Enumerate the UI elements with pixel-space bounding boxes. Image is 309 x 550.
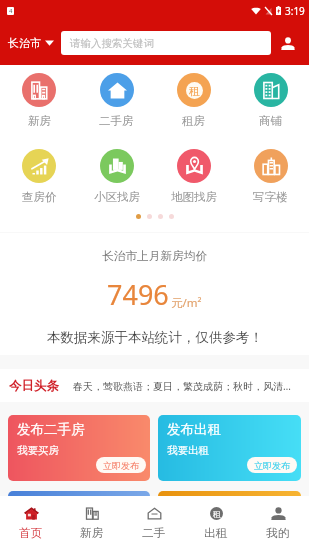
button[interactable]: 我的 [247, 496, 309, 550]
staticText: 出租 [204, 526, 228, 541]
button[interactable]: 新房 [61, 496, 123, 550]
staticText: 小区找房 [94, 190, 140, 204]
button[interactable]: 地图找房 [155, 149, 232, 204]
staticText: 我要求购 [17, 520, 59, 533]
button[interactable]: 二手 [123, 496, 185, 550]
staticText: 7496 [107, 276, 169, 313]
button[interactable]: 立即发布 [247, 526, 297, 542]
staticText: 租 [189, 84, 200, 98]
staticText: 长治市 [8, 36, 41, 50]
staticText: 春天，莺歌燕语；夏日，繁茂成荫；秋时，风清… [73, 379, 291, 393]
staticText: 发布二手房 [17, 421, 85, 438]
button[interactable]: 长治市 [8, 30, 54, 56]
staticText: 发布出租 [167, 421, 221, 438]
staticText: 我要求租 [167, 520, 209, 533]
button[interactable]: 发布求购 [8, 491, 150, 550]
button[interactable]: 发布求租 [158, 491, 301, 550]
button[interactable]: 查房价 [0, 149, 78, 204]
staticText: 二手房 [99, 114, 134, 128]
staticText: 发布求购 [17, 497, 71, 514]
staticText: 租 [213, 509, 221, 519]
button[interactable]: 新房 [0, 73, 78, 128]
button[interactable]: 立即发布 [96, 457, 146, 473]
button[interactable]: 个人中心 [280, 31, 296, 55]
staticText: 4 [9, 7, 13, 15]
staticText: 我要出租 [167, 444, 209, 457]
staticText: 长治市上月新房均价 [102, 249, 208, 264]
staticText: 立即发布 [103, 460, 139, 471]
staticText: 3:19 [285, 4, 305, 18]
button[interactable]: 发布二手房 [8, 415, 150, 481]
staticText: 元/m² [171, 295, 202, 311]
staticText: 写字楼 [253, 190, 288, 204]
button[interactable]: 今日头条 [0, 369, 309, 402]
button[interactable]: 租 [185, 496, 247, 550]
button[interactable]: 二手房 [78, 73, 155, 128]
staticText: 我要买房 [17, 444, 59, 457]
button[interactable]: 请输入搜索关键词 [61, 31, 271, 55]
staticText: 新房 [28, 114, 51, 128]
staticText: 地图找房 [171, 190, 217, 204]
staticText: 请输入搜索关键词 [70, 37, 154, 50]
button[interactable]: 立即发布 [247, 457, 297, 473]
staticText: 首页 [19, 526, 43, 541]
staticText: 新房 [80, 526, 104, 541]
staticText: 我的 [266, 526, 290, 541]
staticText: 立即发布 [254, 460, 290, 471]
button[interactable]: 小区找房 [78, 149, 155, 204]
button[interactable]: 立即发布 [96, 526, 146, 542]
staticText: 二手 [142, 526, 166, 541]
staticText: 查房价 [22, 190, 57, 204]
button[interactable]: 商铺 [232, 73, 309, 128]
button[interactable]: 写字楼 [232, 149, 309, 204]
staticText: 立即发布 [254, 529, 290, 540]
staticText: 本数据来源于本站统计，仅供参考！ [47, 329, 263, 346]
button[interactable]: 租 [155, 73, 232, 128]
staticText: 今日头条 [9, 378, 59, 394]
button[interactable]: 首页 [0, 496, 61, 550]
staticText: 租房 [182, 114, 205, 128]
staticText: 商铺 [259, 114, 282, 128]
staticText: 发布求租 [167, 497, 221, 514]
button[interactable]: 发布出租 [158, 415, 301, 481]
